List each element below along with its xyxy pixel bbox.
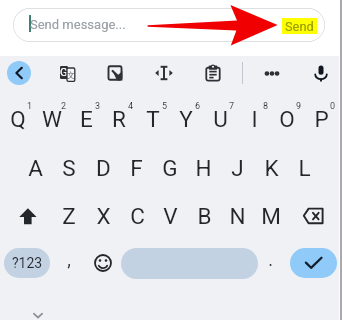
staticText: G [60,66,68,79]
staticText: A [28,155,43,181]
button[interactable]: M [254,196,288,236]
staticText: Send [285,19,314,34]
staticText: I [251,106,258,132]
button[interactable]: R [102,99,136,139]
staticText: J [231,155,244,181]
staticText: 8 [263,101,269,112]
staticText: 2 [61,101,67,112]
button[interactable]: Translate [51,57,83,89]
button[interactable]: O [270,99,304,139]
staticText: ?123 [12,255,43,271]
staticText: W [42,106,62,132]
button[interactable]: . [253,244,287,284]
button[interactable]: B [187,196,221,236]
button[interactable]: Back [7,61,31,85]
button[interactable]: Z [52,196,86,236]
staticText: C [130,203,145,229]
staticText: 文 [67,70,75,80]
staticText: L [298,155,311,181]
button[interactable]: V [153,196,187,236]
staticText: O [279,106,295,132]
button[interactable]: X [86,196,120,236]
staticText: 4 [128,101,134,112]
button[interactable]: Send message... [13,8,325,42]
button[interactable]: L [287,148,321,188]
button[interactable]: E [69,99,103,139]
button[interactable]: K [254,148,288,188]
button[interactable]: Emoji [86,243,120,283]
staticText: Q [10,106,26,132]
button[interactable]: H [186,148,220,188]
button[interactable]: Handwriting [99,57,131,89]
button[interactable]: P [304,99,338,139]
button[interactable]: ?123 [4,248,50,278]
button[interactable]: A [18,148,52,188]
button[interactable]: More options [256,57,288,89]
button[interactable]: Space [121,248,258,279]
staticText: H [195,155,212,181]
staticText: 0 [330,101,336,112]
staticText: P [314,106,329,132]
staticText: T [146,106,160,132]
button[interactable]: T [136,99,170,139]
staticText: Y [179,106,193,132]
staticText: D [96,155,111,181]
staticText: K [264,155,279,181]
staticText: 5 [162,101,168,112]
button[interactable]: W [35,99,69,139]
button[interactable]: I [237,99,271,139]
staticText: F [130,155,143,181]
staticText: S [62,155,76,181]
button[interactable]: Clipboard [197,57,229,89]
staticText: 1 [27,101,33,112]
button[interactable]: Move cursor [148,57,180,89]
button[interactable]: Send [285,18,314,34]
staticText: M [261,203,281,229]
button[interactable]: Hide keyboard [26,302,50,320]
button[interactable]: Voice input [305,57,337,89]
staticText: , [67,249,71,270]
staticText: Send message... [30,17,126,32]
button[interactable]: S [52,148,86,188]
button[interactable]: F [119,148,153,188]
staticText: 3 [95,101,101,112]
button[interactable]: U [203,99,237,139]
button[interactable]: , [52,244,86,284]
staticText: G [162,155,178,181]
button[interactable]: C [120,196,154,236]
button[interactable]: Enter [290,248,337,278]
button[interactable]: Shift [10,196,44,236]
button[interactable]: Backspace [297,196,331,236]
staticText: V [163,203,178,229]
staticText: B [197,203,212,229]
button[interactable]: D [86,148,120,188]
staticText: U [213,106,228,132]
button[interactable]: N [220,196,254,236]
staticText: . [268,249,273,270]
staticText: 6 [195,101,201,112]
button[interactable]: Y [169,99,203,139]
staticText: 9 [296,101,302,112]
staticText: X [96,203,111,229]
staticText: 7 [229,101,235,112]
button[interactable]: G [153,148,187,188]
button[interactable]: Q [1,99,35,139]
staticText: Z [62,203,76,229]
button[interactable]: J [220,148,254,188]
staticText: R [112,106,126,132]
staticText: N [229,203,246,229]
staticText: E [80,106,93,132]
